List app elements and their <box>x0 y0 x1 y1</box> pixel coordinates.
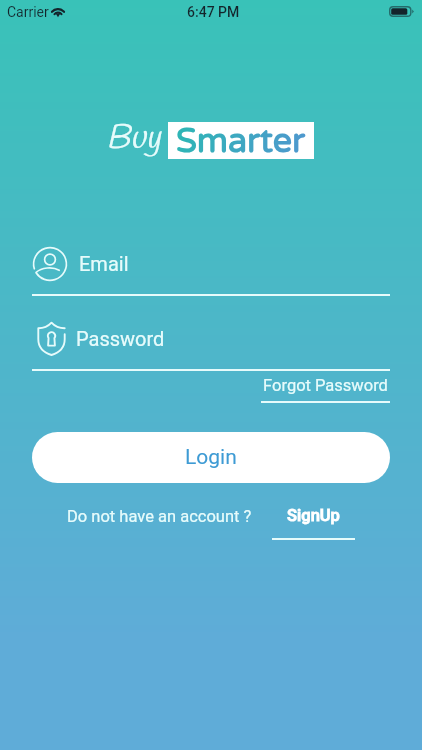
staticText: 6:47 PM <box>187 4 240 20</box>
staticText: SignUp <box>287 506 340 525</box>
staticText: Buy <box>106 116 161 161</box>
button[interactable]: Password <box>32 312 390 364</box>
other: Email <box>32 246 68 282</box>
staticText: Login <box>185 445 237 470</box>
button[interactable]: Forgot Password <box>261 376 390 403</box>
other: Password <box>35 321 68 354</box>
button[interactable]: Login <box>32 432 390 483</box>
button[interactable]: SignUp <box>272 506 355 540</box>
staticText: Password <box>76 327 165 350</box>
staticText: Do not have an account ? <box>67 507 252 526</box>
staticText: Forgot Password <box>263 376 388 395</box>
staticText: Carrier <box>7 4 49 20</box>
staticText: Smarter <box>176 121 306 158</box>
staticText: Email <box>79 252 129 275</box>
button[interactable]: Email <box>32 238 390 290</box>
